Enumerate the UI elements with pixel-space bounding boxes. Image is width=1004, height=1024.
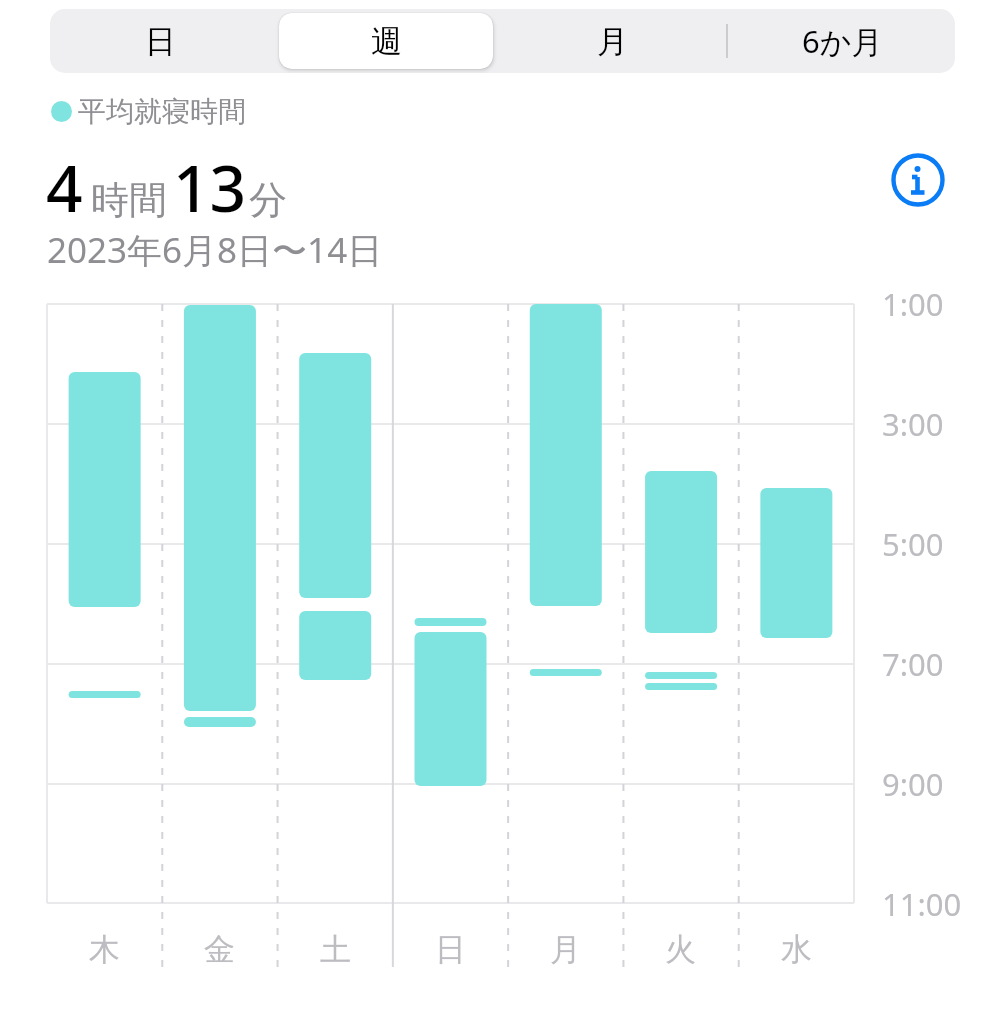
button[interactable]: 月 bbox=[507, 9, 717, 73]
staticText: 7:00 bbox=[882, 643, 944, 685]
staticText: 3:00 bbox=[882, 403, 944, 445]
staticText: 1:00 bbox=[882, 283, 944, 325]
staticText: 分 bbox=[249, 176, 287, 224]
staticText: 木 bbox=[89, 930, 120, 969]
staticText: 6か月 bbox=[802, 20, 883, 62]
staticText: 11:00 bbox=[882, 883, 962, 925]
staticText: 9:00 bbox=[882, 763, 944, 805]
staticText: 月 bbox=[550, 930, 581, 969]
staticText: 日 bbox=[435, 930, 466, 969]
staticText: 時間 bbox=[91, 176, 167, 224]
staticText: 月 bbox=[597, 22, 628, 61]
staticText: 4 bbox=[46, 144, 83, 231]
staticText: 2023年6月8日〜14日 bbox=[47, 226, 383, 274]
button[interactable]: 週 bbox=[281, 9, 491, 73]
staticText: 週 bbox=[371, 22, 402, 61]
staticText: 日 bbox=[145, 22, 176, 61]
staticText: 水 bbox=[781, 930, 812, 969]
staticText: 13 bbox=[173, 144, 247, 231]
staticText: 5:00 bbox=[882, 523, 944, 565]
button[interactable]: 詳しい情報 bbox=[891, 153, 945, 207]
button[interactable]: 6か月 bbox=[737, 9, 947, 73]
staticText: 平均就寝時間 bbox=[78, 94, 246, 129]
staticText: 火 bbox=[665, 930, 696, 969]
staticText: 金 bbox=[204, 930, 235, 969]
button[interactable]: 日 bbox=[55, 9, 265, 73]
staticText: 土 bbox=[320, 930, 351, 969]
